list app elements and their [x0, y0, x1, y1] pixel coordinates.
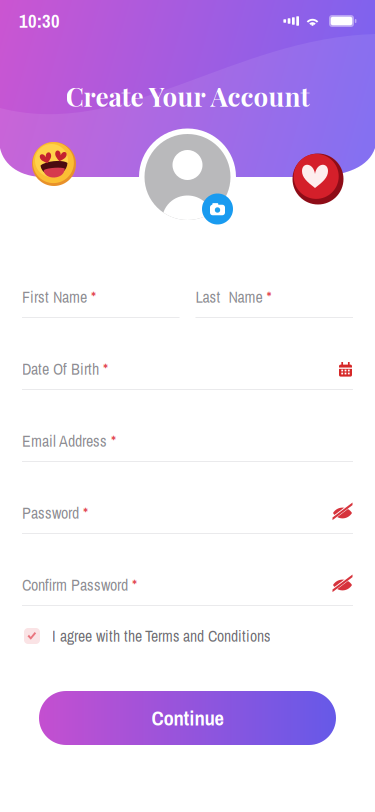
staticText: I agree with the Terms and Conditions — [52, 625, 270, 647]
button[interactable]: Confirm Password — [22, 575, 353, 606]
staticText: * — [266, 286, 271, 308]
button[interactable]: Email Address — [22, 431, 353, 462]
staticText: Confirm Password — [22, 574, 128, 596]
staticText: Last Name — [195, 286, 262, 308]
button[interactable]: Date Of Birth — [22, 359, 353, 390]
staticText: Date Of Birth — [22, 358, 99, 380]
button[interactable]: Change profile photo — [137, 127, 237, 227]
staticText: * — [83, 502, 88, 524]
button[interactable]: Last Name — [195, 287, 353, 318]
staticText: Password — [22, 502, 79, 524]
staticText: 10:30 — [19, 8, 60, 33]
button[interactable]: I agree with the Terms and Conditions — [0, 623, 375, 649]
button[interactable]: First Name — [22, 287, 179, 318]
staticText: First Name — [22, 286, 87, 308]
staticText: * — [132, 574, 137, 596]
staticText: * — [103, 358, 108, 380]
staticText: Email Address — [22, 430, 107, 452]
staticText: Create Your Account — [65, 79, 309, 113]
staticText: * — [111, 430, 116, 452]
button[interactable]: Password — [22, 503, 353, 534]
staticText: Continue — [151, 704, 223, 732]
staticText: * — [91, 286, 96, 308]
button[interactable]: Continue — [39, 691, 336, 745]
